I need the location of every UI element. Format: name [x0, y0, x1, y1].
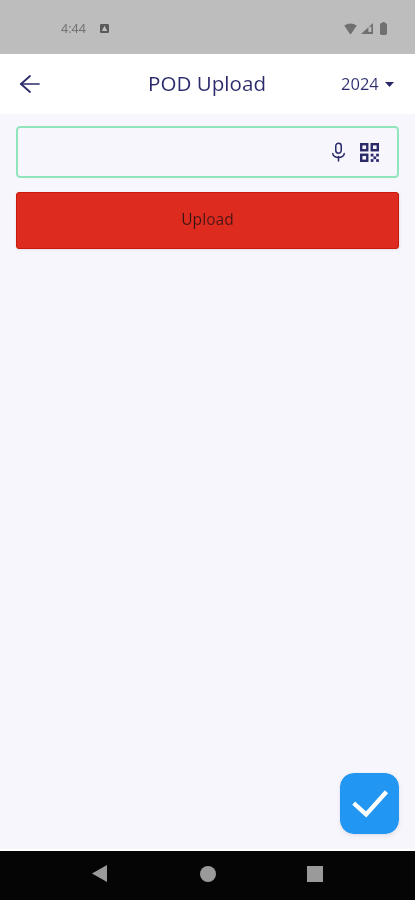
- button[interactable]: Scan QR code: [356, 139, 382, 165]
- button[interactable]: 2024: [337, 65, 398, 103]
- staticText: Upload: [181, 208, 234, 229]
- button[interactable]: Recent apps: [286, 849, 344, 898]
- button[interactable]: Voice search: [16, 126, 399, 178]
- staticText: 4:44: [61, 20, 86, 37]
- button[interactable]: Back: [8, 62, 52, 106]
- staticText: 2024: [341, 72, 379, 94]
- button[interactable]: Voice search: [325, 139, 351, 165]
- button[interactable]: Confirm: [340, 773, 399, 834]
- button[interactable]: Back: [70, 849, 128, 898]
- button[interactable]: Home: [179, 849, 237, 898]
- staticText: POD Upload: [148, 69, 267, 97]
- button[interactable]: Upload: [16, 192, 399, 249]
